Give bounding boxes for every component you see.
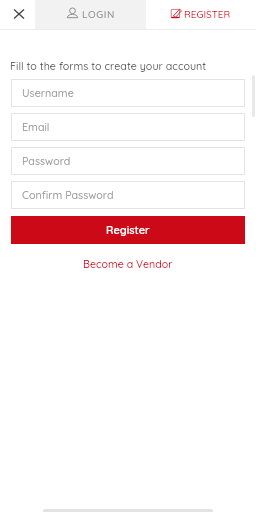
button[interactable]: REGISTER [146, 0, 256, 29]
staticText: Register [106, 223, 150, 237]
staticText: Fill to the forms to create your account [10, 59, 207, 72]
staticText: Confirm Password [22, 188, 114, 201]
button[interactable]: Close [0, 0, 35, 29]
button[interactable]: Password [11, 147, 245, 175]
staticText: REGISTER [184, 8, 231, 21]
staticText: Username [22, 86, 74, 99]
button[interactable]: LOGIN [35, 0, 146, 29]
staticText: Password [22, 154, 71, 167]
button[interactable]: Email [11, 113, 245, 141]
button[interactable]: Become a Vendor [83, 257, 173, 270]
button[interactable]: Register [11, 216, 245, 244]
staticText: LOGIN [82, 8, 115, 21]
button[interactable]: Username [11, 79, 245, 107]
button[interactable]: Confirm Password [11, 181, 245, 209]
staticText: Email [22, 120, 50, 133]
